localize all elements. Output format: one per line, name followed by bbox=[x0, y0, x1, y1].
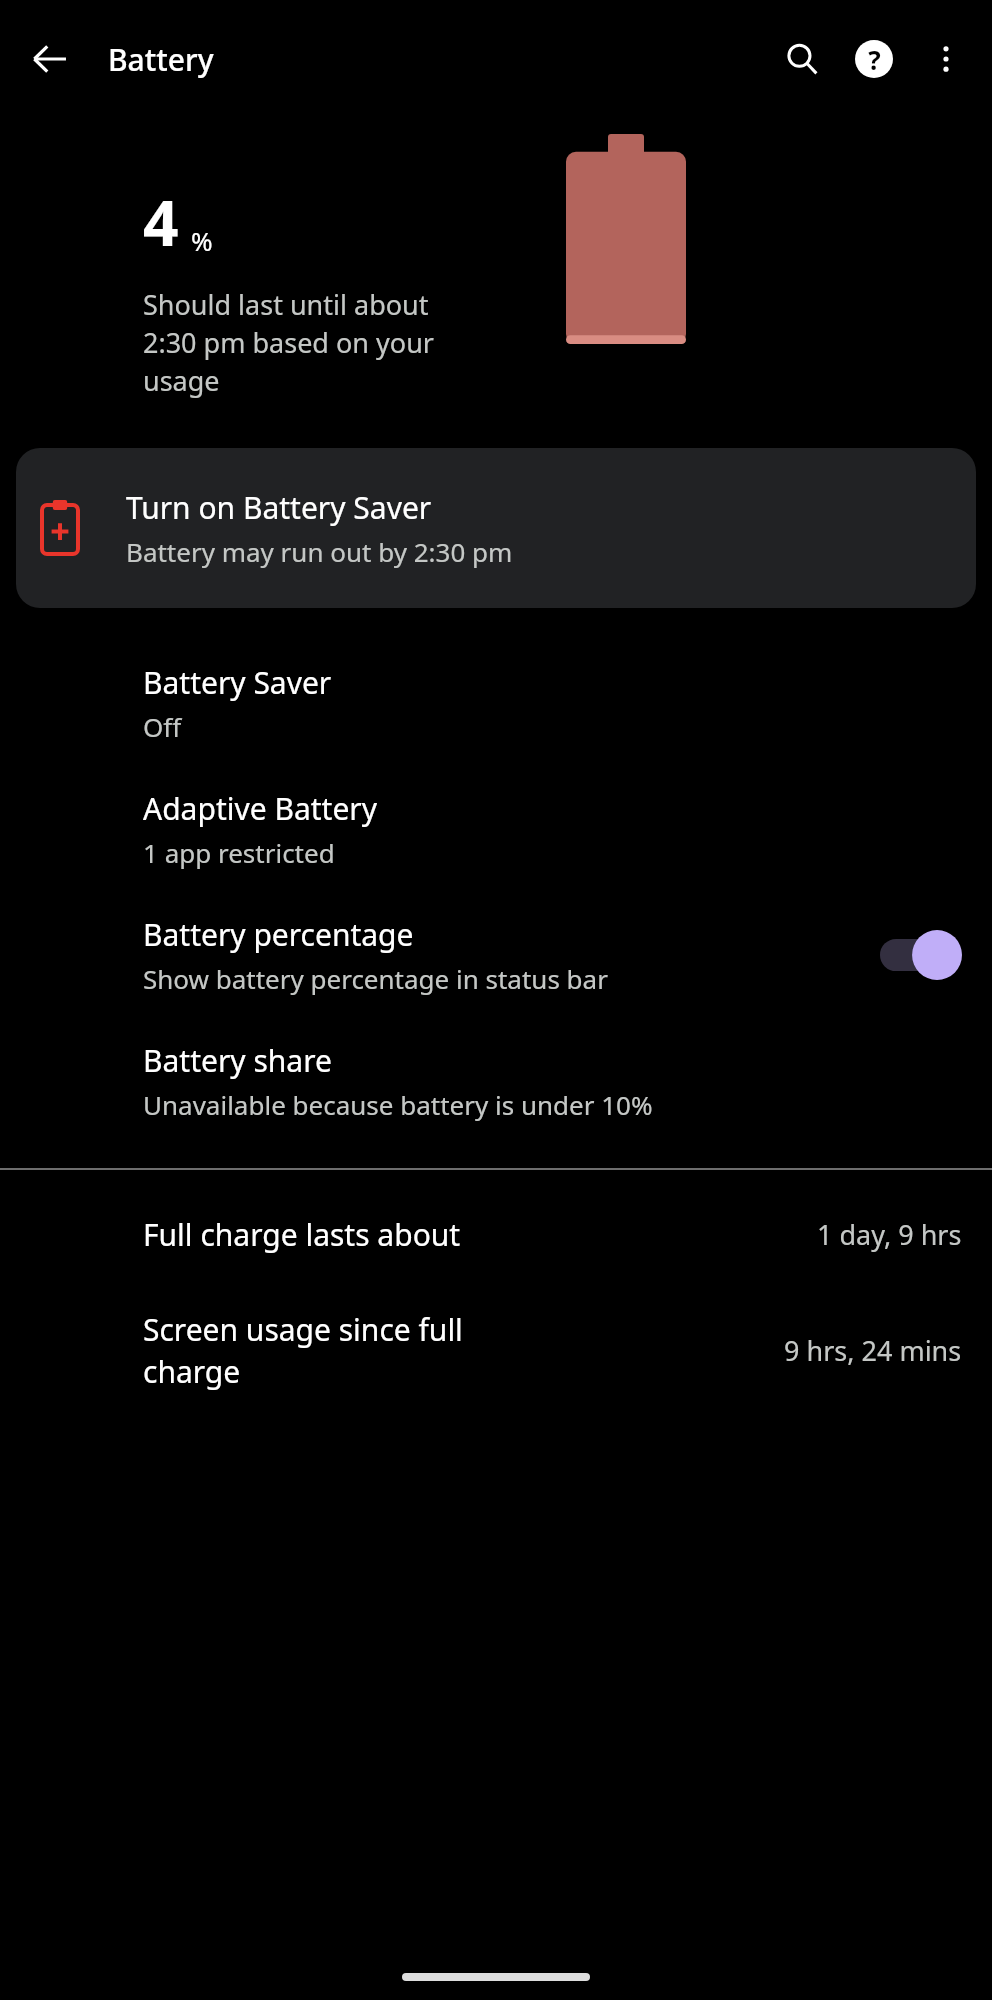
staticText: 9 hrs, 24 mins bbox=[784, 1332, 962, 1369]
staticText: Show battery percentage in status bar bbox=[143, 961, 608, 996]
staticText: Battery bbox=[108, 39, 214, 80]
staticText: 4 bbox=[143, 180, 179, 264]
staticText: Screen usage since full charge bbox=[143, 1309, 772, 1392]
staticText: Should last until about 2:30 pm based on… bbox=[143, 286, 434, 399]
button[interactable]: More options bbox=[910, 23, 982, 95]
button[interactable]: Battery percentage toggle bbox=[880, 929, 962, 981]
button[interactable]: Full charge lasts about bbox=[0, 1214, 992, 1255]
button[interactable]: Adaptive Battery bbox=[0, 788, 992, 870]
staticText: % bbox=[191, 223, 213, 258]
button[interactable]: Turn on Battery Saver bbox=[16, 448, 976, 608]
staticText: Battery Saver bbox=[143, 662, 332, 703]
button[interactable]: Help bbox=[838, 23, 910, 95]
staticText: Unavailable because battery is under 10% bbox=[143, 1087, 653, 1122]
staticText: 1 app restricted bbox=[143, 835, 335, 870]
staticText: Full charge lasts about bbox=[143, 1214, 805, 1255]
staticText: Battery may run out by 2:30 pm bbox=[126, 534, 513, 569]
button[interactable]: Battery share bbox=[0, 1040, 992, 1122]
staticText: Off bbox=[143, 709, 182, 744]
staticText: 1 day, 9 hrs bbox=[817, 1216, 962, 1253]
staticText: Battery share bbox=[143, 1040, 332, 1081]
button[interactable]: Battery percentage bbox=[0, 914, 992, 996]
staticText: Turn on Battery Saver bbox=[126, 487, 432, 528]
button[interactable]: Back bbox=[14, 23, 86, 95]
button[interactable]: Search bbox=[766, 23, 838, 95]
button[interactable]: Screen usage since full charge bbox=[0, 1309, 992, 1392]
staticText: Adaptive Battery bbox=[143, 788, 378, 829]
staticText: Battery percentage bbox=[143, 914, 414, 955]
button[interactable]: Battery Saver bbox=[0, 662, 992, 744]
staticText: ? bbox=[868, 42, 881, 77]
